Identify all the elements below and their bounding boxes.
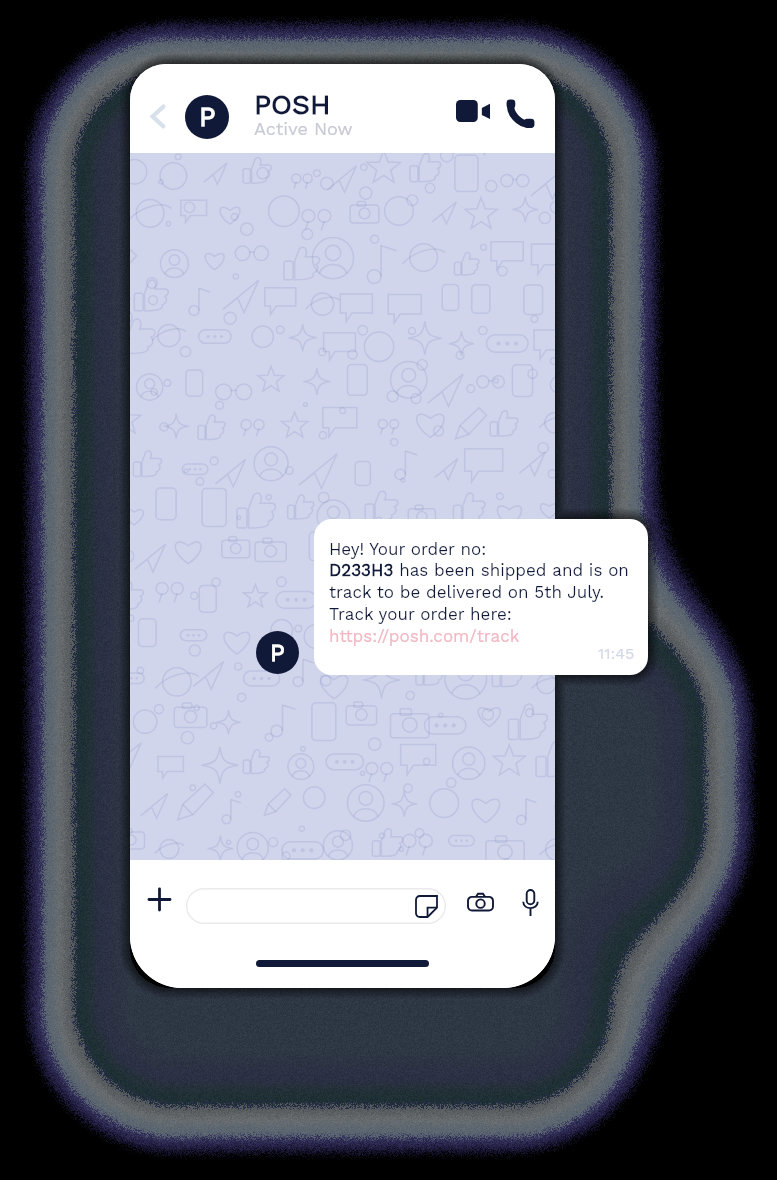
staticText: P	[199, 101, 216, 133]
button[interactable]: Message input	[186, 888, 446, 924]
button[interactable]: Profile	[185, 95, 229, 139]
button[interactable]: Call	[499, 94, 541, 134]
staticText: Hey! Your order no: D233H3 has been ship…	[329, 539, 629, 646]
button[interactable]: Voice message	[512, 884, 548, 922]
staticText: 11:45	[598, 644, 635, 663]
button[interactable]: Hey! Your order no: D233H3 has been ship…	[314, 519, 648, 675]
staticText: Active Now	[254, 118, 353, 139]
button[interactable]: Video call	[450, 96, 496, 126]
staticText: P	[270, 639, 285, 667]
button[interactable]: Camera	[462, 886, 498, 920]
button[interactable]: Attach	[146, 886, 172, 912]
button[interactable]: Back	[139, 97, 177, 135]
staticText: POSH	[254, 88, 331, 121]
